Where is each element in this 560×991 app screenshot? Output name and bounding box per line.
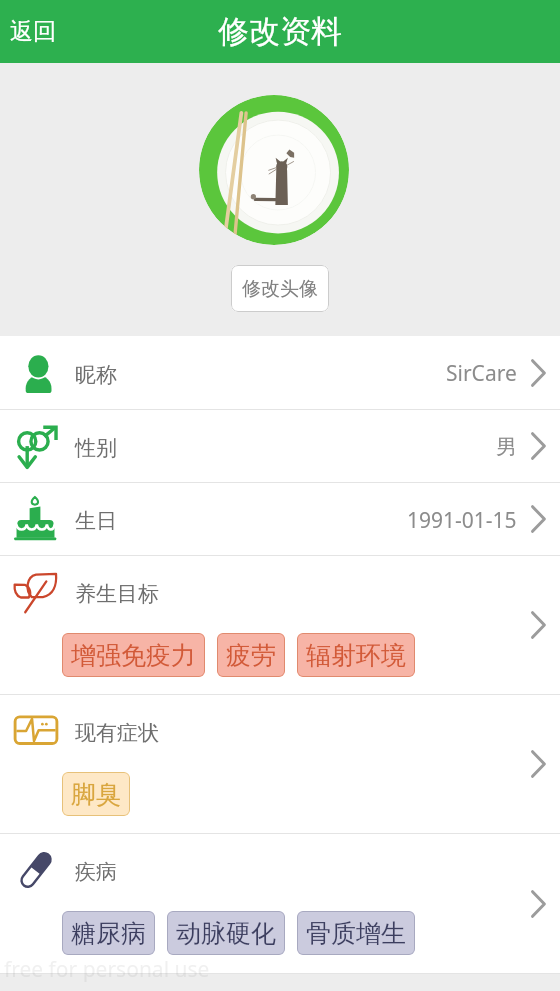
button[interactable]: 疾病 (0, 834, 560, 973)
staticText: 疲劳 (226, 640, 276, 671)
staticText: 动脉硬化 (176, 918, 276, 949)
staticText: 生日 (75, 508, 117, 534)
staticText: 修改资料 (218, 12, 342, 51)
staticText: 1991-01-15 (407, 506, 517, 535)
staticText: 昵称 (75, 362, 117, 388)
staticText: 骨质增生 (306, 918, 406, 949)
button[interactable]: Change avatar photo (199, 95, 349, 245)
staticText: 脚臭 (71, 779, 121, 810)
button[interactable]: 养生目标 (0, 556, 560, 694)
staticText: 返回 (10, 17, 56, 46)
button[interactable]: 修改头像 (231, 265, 329, 312)
staticText: SirCare (446, 359, 517, 388)
button[interactable]: 返回 (0, 3, 70, 60)
staticText: 现有症状 (75, 720, 159, 746)
staticText: 糖尿病 (71, 918, 146, 949)
button[interactable]: 昵称 (0, 336, 560, 409)
staticText: 修改头像 (242, 277, 318, 301)
button[interactable]: 生日 (0, 483, 560, 555)
staticText: free for personal use (4, 955, 210, 984)
button[interactable]: 性别 (0, 410, 560, 482)
staticText: 养生目标 (75, 581, 159, 607)
staticText: 增强免疫力 (71, 640, 196, 671)
staticText: 辐射环境 (306, 640, 406, 671)
staticText: 性别 (75, 435, 117, 461)
button[interactable]: 现有症状 (0, 695, 560, 833)
staticText: 疾病 (75, 859, 117, 885)
staticText: 男 (496, 434, 517, 460)
